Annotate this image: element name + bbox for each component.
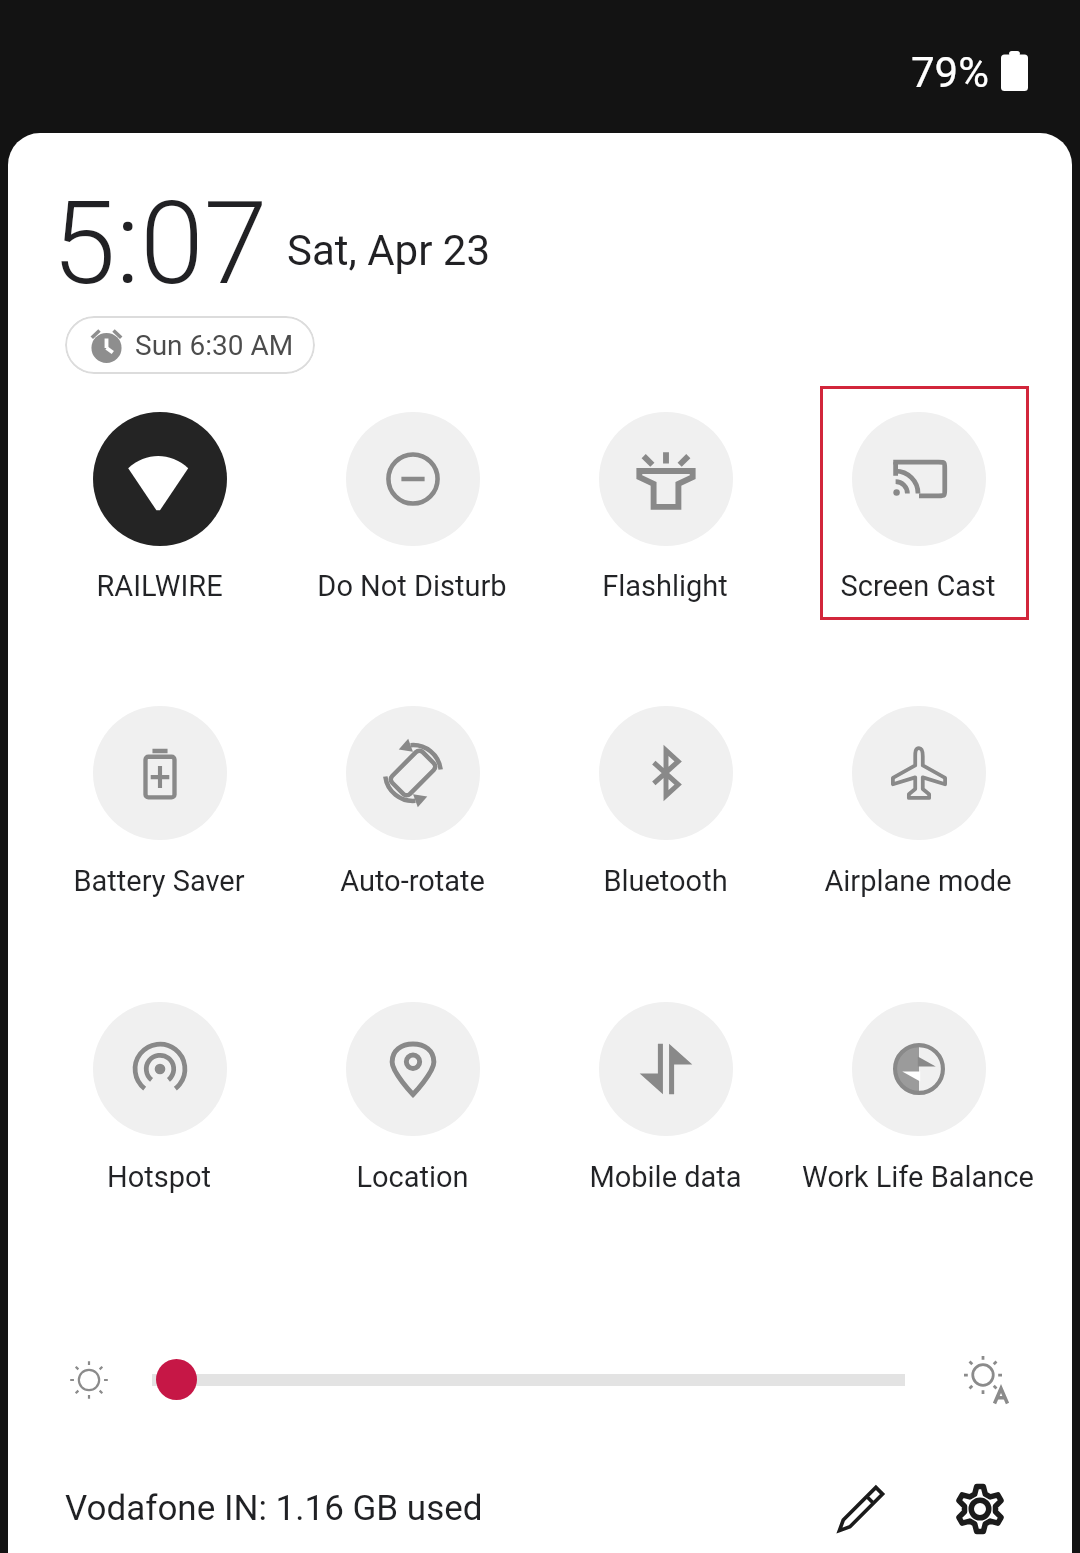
staticText: Flashlight — [602, 569, 728, 603]
button[interactable] — [820, 386, 1029, 620]
staticText: 5:07 — [52, 176, 268, 311]
staticText: Airplane mode — [824, 864, 1012, 898]
button[interactable] — [561, 976, 770, 1211]
staticText: Auto-rotate — [340, 864, 485, 898]
button[interactable] — [814, 680, 1023, 915]
button[interactable] — [561, 386, 770, 620]
staticText: Battery Saver — [73, 864, 245, 898]
staticText: Sat, Apr 23 — [287, 226, 491, 275]
staticText: 79% — [911, 48, 989, 97]
button[interactable] — [308, 976, 517, 1211]
staticText: Bluetooth — [603, 864, 728, 898]
button[interactable] — [308, 680, 517, 915]
button[interactable] — [55, 680, 264, 915]
staticText: Mobile data — [589, 1160, 742, 1194]
button[interactable] — [55, 386, 264, 620]
button[interactable] — [814, 976, 1023, 1211]
button[interactable]: Sun 6:30 AM — [65, 316, 315, 374]
staticText: Work Life Balance — [802, 1160, 1034, 1194]
button[interactable] — [561, 680, 770, 915]
button[interactable]: Settings — [942, 1471, 1018, 1547]
button[interactable] — [308, 386, 517, 620]
button[interactable]: Brightness — [156, 1359, 197, 1400]
staticText: Screen Cast — [840, 569, 996, 603]
staticText: RAILWIRE — [96, 569, 223, 603]
staticText: Hotspot — [107, 1160, 211, 1194]
staticText: Sun 6:30 AM — [135, 329, 294, 362]
staticText: Location — [356, 1160, 469, 1194]
staticText: Do Not Disturb — [317, 569, 507, 603]
button[interactable] — [55, 976, 264, 1211]
staticText: Vodafone IN: 1.16 GB used — [65, 1488, 483, 1529]
button[interactable]: Edit — [823, 1471, 899, 1547]
